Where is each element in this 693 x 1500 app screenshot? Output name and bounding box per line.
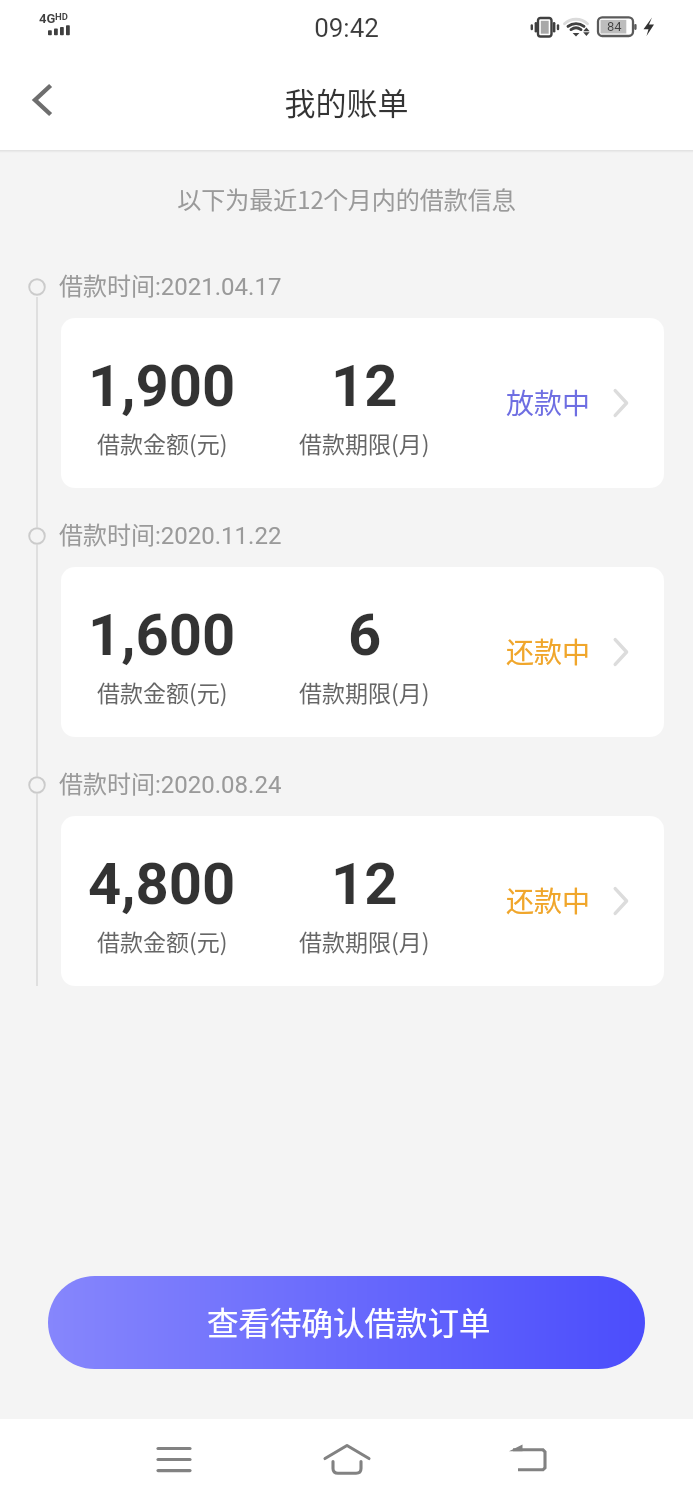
button[interactable]: Back: [489, 1434, 569, 1494]
staticText: 借款时间: [59, 765, 155, 800]
staticText: 84: [607, 19, 622, 34]
staticText: 4G: [39, 11, 56, 26]
staticText: 12: [331, 352, 398, 420]
staticText: 借款时间: [59, 516, 155, 551]
button[interactable]: Home: [307, 1436, 387, 1496]
staticText: 12: [331, 850, 398, 918]
staticText: 我的账单: [0, 79, 693, 124]
staticText: 借款期限(月): [299, 426, 430, 459]
staticText: 借款期限(月): [299, 675, 430, 708]
staticText: 借款期限(月): [299, 924, 430, 957]
staticText: 借款时间: [59, 267, 155, 302]
staticText: 借款金额(元): [97, 426, 228, 459]
button[interactable]: 查看待确认借款订单: [48, 1276, 645, 1369]
button[interactable]: 1,600: [61, 567, 664, 737]
staticText: 放款中: [506, 382, 591, 423]
button[interactable]: Back: [12, 70, 70, 130]
staticText: 以下为最近12个月内的借款信息: [0, 181, 693, 216]
staticText: 6: [348, 601, 382, 669]
staticText: 还款中: [506, 880, 591, 921]
staticText: 1,600: [88, 601, 236, 669]
button[interactable]: Recent apps: [134, 1429, 214, 1489]
staticText: :2020.08.24: [155, 771, 282, 799]
staticText: 1,900: [88, 352, 236, 420]
staticText: 还款中: [506, 631, 591, 672]
staticText: 4,800: [88, 850, 236, 918]
staticText: :2021.04.17: [155, 273, 282, 301]
staticText: 查看待确认借款订单: [207, 1298, 491, 1344]
staticText: HD: [55, 11, 68, 22]
staticText: 借款金额(元): [97, 924, 228, 957]
staticText: 借款金额(元): [97, 675, 228, 708]
staticText: :2020.11.22: [155, 522, 282, 550]
staticText: 09:42: [0, 13, 693, 43]
button[interactable]: 1,900: [61, 318, 664, 488]
button[interactable]: 4,800: [61, 816, 664, 986]
